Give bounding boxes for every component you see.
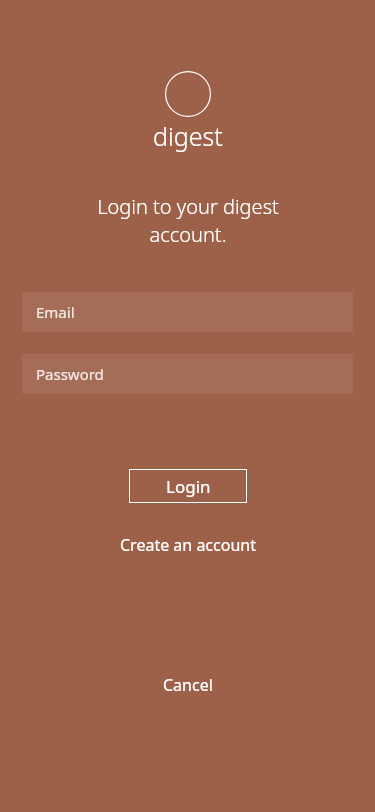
staticText: Cancel bbox=[163, 674, 213, 696]
button[interactable]: Password bbox=[22, 354, 353, 394]
button[interactable]: Login bbox=[129, 469, 247, 503]
staticText: Login bbox=[166, 475, 211, 498]
staticText: Create an account bbox=[120, 534, 256, 556]
button[interactable]: Cancel bbox=[147, 666, 229, 704]
button[interactable]: Email bbox=[22, 292, 353, 332]
staticText: Password bbox=[36, 364, 104, 384]
staticText: Login to your digest account. bbox=[97, 193, 279, 248]
button[interactable]: Create an account bbox=[104, 526, 272, 564]
staticText: digest bbox=[153, 119, 223, 153]
staticText: Email bbox=[36, 302, 75, 322]
other: digest logo bbox=[165, 71, 211, 117]
